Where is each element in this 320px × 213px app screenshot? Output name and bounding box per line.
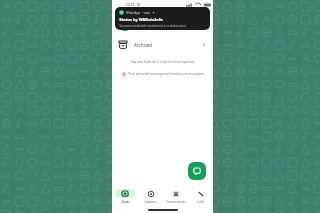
staticText: Calls [197, 200, 204, 204]
button[interactable]: WhatsApp [115, 7, 210, 30]
staticText: Communities [166, 200, 186, 204]
staticText: WhatsApp [126, 11, 140, 15]
button[interactable]: Archived [112, 37, 213, 53]
staticText: You were probably mentioned in a status … [119, 24, 186, 27]
button[interactable]: Chats [112, 186, 138, 206]
staticText: 22:31 [125, 2, 135, 7]
staticText: Tap and hold on a chat for more options [112, 59, 213, 64]
staticText: Updates [144, 200, 157, 204]
other: Archived [119, 41, 127, 49]
other: Open archived [202, 43, 206, 47]
staticText: Archived [134, 42, 152, 48]
button[interactable]: Calls [188, 186, 213, 206]
staticText: Your personal messages are end-to-end en… [128, 72, 204, 76]
button[interactable]: Communities [163, 186, 188, 206]
button[interactable]: New chat [188, 162, 206, 180]
staticText: • now [142, 11, 150, 15]
button[interactable]: Updates [138, 186, 163, 206]
staticText: Chats [121, 200, 130, 204]
staticText: Status by WABetaInfo [119, 17, 163, 22]
